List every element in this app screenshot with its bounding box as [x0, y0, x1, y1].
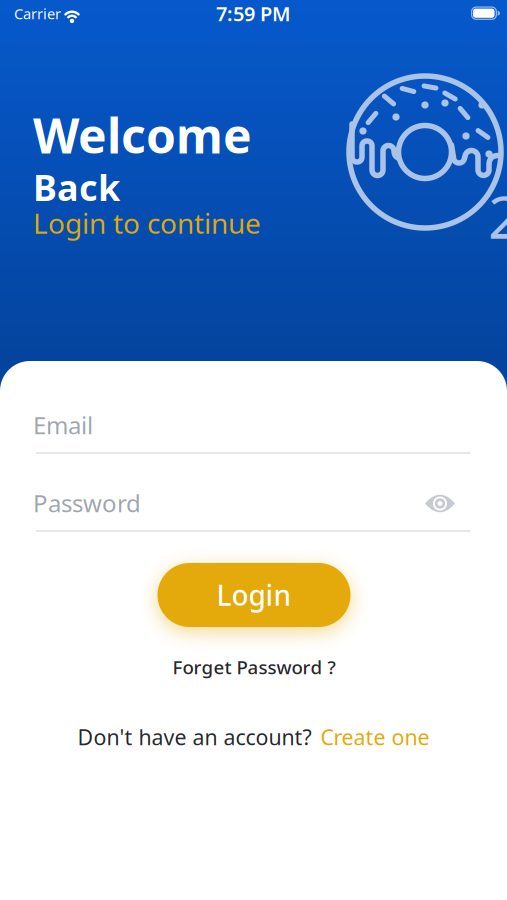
staticText: Email	[33, 409, 93, 441]
button[interactable]: Create one	[320, 723, 429, 751]
button[interactable]: Show password	[423, 495, 457, 512]
button[interactable]: Email	[0, 394, 507, 460]
staticText: Login	[216, 576, 291, 614]
staticText: 7:59 PM	[216, 0, 291, 27]
staticText: Carrier	[14, 4, 61, 23]
staticText: Forget Password ?	[172, 655, 335, 679]
staticText: Create one	[320, 723, 429, 751]
button[interactable]: Forget Password ?	[172, 655, 335, 679]
staticText: Password	[33, 487, 141, 519]
button[interactable]: Login	[157, 563, 350, 627]
staticText: Login to continue	[33, 204, 261, 242]
staticText: Don't have an account?	[77, 723, 311, 751]
staticText: 2	[488, 177, 507, 255]
button[interactable]: Password	[0, 472, 507, 538]
staticText: Back	[33, 163, 120, 211]
staticText: Welcome	[33, 103, 252, 167]
